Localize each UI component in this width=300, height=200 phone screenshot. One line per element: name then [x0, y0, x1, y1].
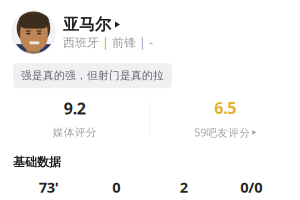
button[interactable]: 亚马尔 [0, 0, 300, 54]
staticText: 59吧友评分 [194, 125, 250, 140]
staticText: 媒体评分 [53, 126, 97, 139]
staticText: 9.2 [64, 98, 86, 119]
staticText: 73' [39, 177, 59, 197]
staticText: 西班牙 | 前锋 | - [63, 34, 153, 50]
staticText: 亚马尔 [63, 15, 111, 34]
staticText: 2 [180, 177, 188, 197]
staticText: 强是真的强，但射门是真的拉 [21, 69, 164, 82]
staticText: 基础数据 [13, 154, 61, 169]
button[interactable]: 6.5 [150, 97, 300, 139]
staticText: 6.5 [214, 97, 236, 118]
staticText: 0/0 [240, 177, 262, 197]
staticText: 0 [112, 177, 120, 197]
